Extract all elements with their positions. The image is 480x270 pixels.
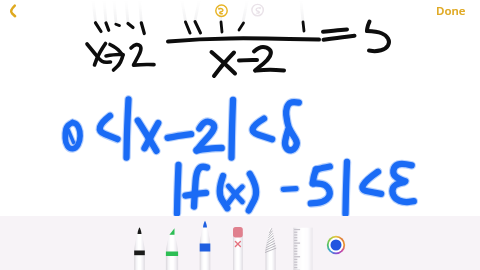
button[interactable]: Undo	[210, 0, 233, 23]
button[interactable]: Redo	[246, 0, 269, 23]
button[interactable]: Back	[0, 0, 26, 26]
button[interactable]: Done	[429, 0, 473, 21]
staticText: Done	[436, 3, 466, 19]
